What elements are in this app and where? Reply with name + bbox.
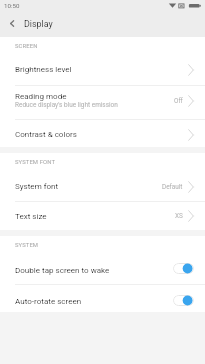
staticText: Reading mode: [15, 92, 67, 101]
staticText: Auto-rotate screen: [15, 297, 173, 306]
button[interactable]: Brightness level: [0, 56, 205, 85]
staticText: System font: [15, 182, 59, 191]
button[interactable]: Back: [0, 12, 23, 35]
staticText: XS: [175, 212, 183, 220]
button[interactable]: Double tap screen to wake: [0, 254, 205, 284]
staticText: Default: [162, 183, 183, 191]
staticText: Display: [24, 19, 53, 29]
staticText: Reduce display's blue light emission: [15, 101, 118, 109]
other: Toggle Double tap screen to wake: [173, 263, 194, 274]
staticText: Off: [174, 97, 183, 105]
button[interactable]: System font: [0, 172, 205, 201]
staticText: Contrast & colors: [15, 130, 77, 139]
staticText: Double tap screen to wake: [15, 266, 173, 275]
button[interactable]: Reading mode: [0, 86, 205, 119]
staticText: SYSTEM FONT: [15, 159, 55, 166]
other: Toggle Auto-rotate screen: [173, 295, 194, 306]
staticText: Brightness level: [15, 65, 72, 74]
button[interactable]: Text size: [0, 202, 205, 230]
staticText: 10:50: [4, 2, 20, 9]
staticText: SCREEN: [15, 43, 38, 50]
button[interactable]: Auto-rotate screen: [0, 285, 205, 312]
staticText: SYSTEM: [15, 242, 39, 249]
button[interactable]: Contrast & colors: [0, 120, 205, 147]
staticText: Text size: [15, 212, 47, 221]
